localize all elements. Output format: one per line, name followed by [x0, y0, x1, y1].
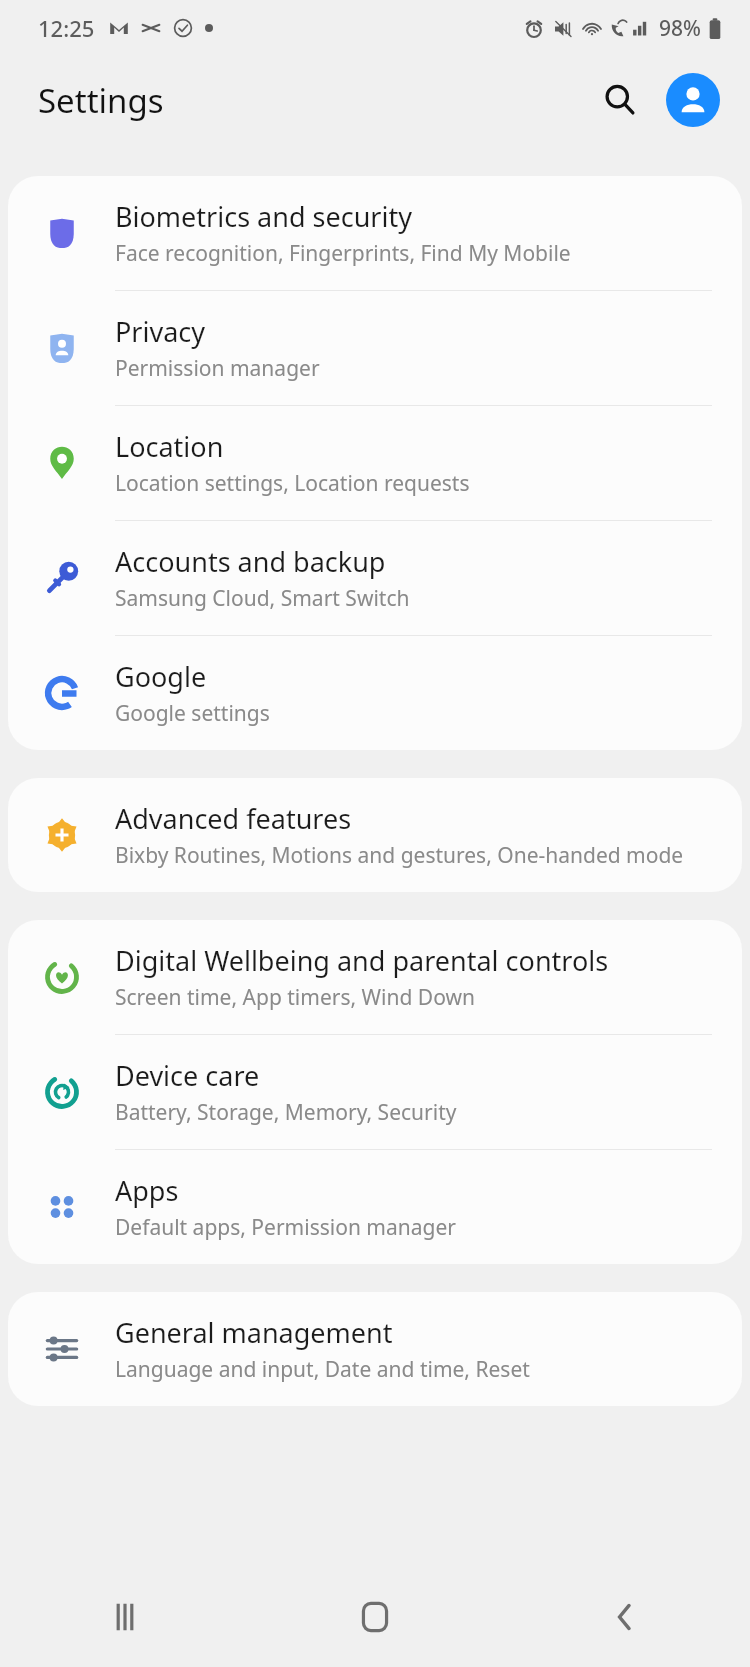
button[interactable]: Back — [500, 1567, 750, 1667]
staticText: Device care — [115, 1057, 260, 1094]
staticText: Digital Wellbeing and parental controls — [115, 942, 609, 979]
button[interactable]: Privacy — [8, 291, 742, 405]
button[interactable]: Search — [590, 70, 650, 130]
staticText: Battery, Storage, Memory, Security — [115, 1098, 457, 1127]
staticText: Location — [115, 428, 224, 465]
button[interactable]: Location — [8, 406, 742, 520]
button[interactable]: General management — [8, 1292, 742, 1406]
button[interactable]: Google — [8, 636, 742, 750]
button[interactable]: Recents — [0, 1567, 250, 1667]
staticText: Apps — [115, 1172, 179, 1209]
staticText: Samsung Cloud, Smart Switch — [115, 584, 410, 613]
staticText: Google settings — [115, 699, 270, 728]
staticText: Screen time, App timers, Wind Down — [115, 983, 475, 1012]
button[interactable]: Device care — [8, 1035, 742, 1149]
button[interactable]: Apps — [8, 1150, 742, 1264]
staticText: 98% — [659, 14, 701, 43]
staticText: Location settings, Location requests — [115, 469, 470, 498]
staticText: Privacy — [115, 313, 206, 350]
staticText: Advanced features — [115, 800, 352, 837]
staticText: Accounts and backup — [115, 543, 386, 580]
button[interactable]: Account — [666, 73, 720, 127]
staticText: Language and input, Date and time, Reset — [115, 1355, 530, 1384]
staticText: Default apps, Permission manager — [115, 1213, 456, 1242]
button[interactable]: Digital Wellbeing and parental controls — [8, 920, 742, 1034]
staticText: Permission manager — [115, 354, 320, 383]
staticText: Bixby Routines, Motions and gestures, On… — [115, 841, 684, 870]
staticText: Face recognition, Fingerprints, Find My … — [115, 239, 571, 268]
button[interactable]: Advanced features — [8, 778, 742, 892]
staticText: Biometrics and security — [115, 198, 412, 235]
staticText: Settings — [38, 78, 164, 123]
staticText: Google — [115, 658, 207, 695]
button[interactable]: Accounts and backup — [8, 521, 742, 635]
button[interactable]: Home — [250, 1567, 500, 1667]
staticText: 12:25 — [38, 13, 95, 43]
staticText: General management — [115, 1314, 393, 1351]
button[interactable]: Biometrics and security — [8, 176, 742, 290]
